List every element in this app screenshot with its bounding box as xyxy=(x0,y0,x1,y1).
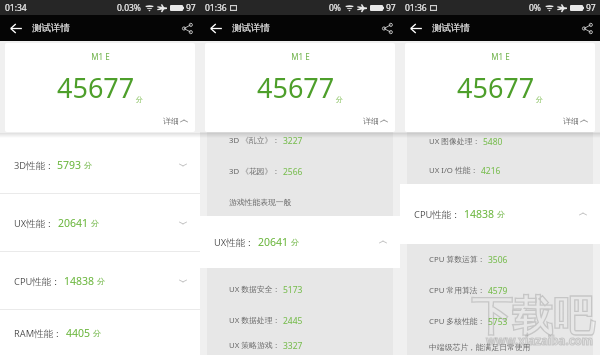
button[interactable]: 3D性能： xyxy=(0,136,200,193)
staticText: UX性能： xyxy=(14,217,55,230)
staticText: M1 E xyxy=(491,51,510,62)
staticText: RAM性能： xyxy=(14,327,63,340)
staticText: 3D 《乱立》： xyxy=(229,135,281,146)
staticText: 4405 xyxy=(66,326,91,340)
button[interactable]: RAM性能： xyxy=(0,310,200,355)
staticText: 14838 xyxy=(64,274,95,288)
staticText: 中端级芯片，能满足日常使用 xyxy=(429,342,531,352)
staticText: 3D 《花园》： xyxy=(229,166,281,177)
staticText: 分 xyxy=(91,218,99,228)
staticText: 0% xyxy=(329,2,341,14)
button[interactable]: Back xyxy=(205,17,227,39)
staticText: 详细 xyxy=(163,116,179,126)
staticText: 详细 xyxy=(563,116,579,126)
button[interactable]: 详细 xyxy=(163,116,188,126)
button[interactable]: Share xyxy=(178,19,196,37)
staticText: 3227 xyxy=(283,135,303,147)
button[interactable]: Back xyxy=(405,17,427,39)
staticText: UX 数据处理： xyxy=(229,315,281,326)
staticText: 4216 xyxy=(481,165,501,177)
staticText: www.xiazaiba.com xyxy=(486,333,593,349)
staticText: UX 数据安全： xyxy=(229,284,281,295)
button[interactable]: CPU性能： xyxy=(0,252,200,309)
staticText: 5173 xyxy=(283,284,303,296)
staticText: UX性能： xyxy=(214,236,255,249)
staticText: 97 xyxy=(586,2,596,14)
staticText: 详细 xyxy=(363,116,379,126)
button[interactable]: Back xyxy=(5,17,27,39)
staticText: CPU 常用算法： xyxy=(429,285,486,296)
staticText: 45677 xyxy=(457,69,535,106)
button[interactable]: UX性能： xyxy=(200,216,400,268)
staticText: CPU 算数运算： xyxy=(429,254,486,265)
staticText: M1 E xyxy=(291,51,310,62)
staticText: 45677 xyxy=(257,69,335,106)
staticText: 测试详情 xyxy=(32,22,70,34)
staticText: 分 xyxy=(97,276,105,286)
button[interactable]: 详细 xyxy=(363,116,388,126)
staticText: 45677 xyxy=(57,69,135,106)
staticText: UX 图像处理： xyxy=(429,136,481,147)
staticText: 测试详情 xyxy=(232,22,270,34)
staticText: 分 xyxy=(536,95,543,104)
staticText: 97 xyxy=(186,2,196,14)
staticText: 4579 xyxy=(488,285,508,297)
staticText: 2445 xyxy=(283,315,303,327)
staticText: 5793 xyxy=(57,158,82,172)
button[interactable]: Share xyxy=(578,19,596,37)
staticText: 01:36 xyxy=(205,2,227,14)
button[interactable]: M1 E xyxy=(5,43,195,132)
staticText: 游戏性能表现一般 xyxy=(229,197,292,207)
staticText: UX 策略游戏： xyxy=(229,340,281,351)
staticText: 分 xyxy=(291,237,299,247)
staticText: 分 xyxy=(84,160,92,170)
staticText: CPU性能： xyxy=(414,208,461,221)
staticText: 3D性能： xyxy=(14,159,54,172)
button[interactable]: M1 E xyxy=(205,43,395,132)
staticText: 下载吧 xyxy=(471,291,594,343)
staticText: M1 E xyxy=(91,51,110,62)
staticText: 14838 xyxy=(464,207,495,221)
staticText: CPU 多核性能： xyxy=(429,316,486,327)
staticText: 0.03% xyxy=(117,2,141,14)
staticText: UX I/O 性能： xyxy=(429,165,479,176)
staticText: 0% xyxy=(529,2,541,14)
staticText: 5480 xyxy=(483,136,503,148)
button[interactable]: CPU性能： xyxy=(400,184,600,244)
staticText: 分 xyxy=(497,209,505,219)
staticText: 3327 xyxy=(283,340,303,352)
staticText: 01:36 xyxy=(405,2,427,14)
staticText: 5753 xyxy=(488,316,508,328)
staticText: 分 xyxy=(93,328,101,338)
staticText: 测试详情 xyxy=(432,22,470,34)
staticText: 2566 xyxy=(283,166,303,178)
button[interactable]: 详细 xyxy=(563,116,588,126)
staticText: CPU性能： xyxy=(14,275,61,288)
button[interactable]: M1 E xyxy=(405,43,595,132)
staticText: 分 xyxy=(336,95,343,104)
staticText: 97 xyxy=(386,2,396,14)
button[interactable]: Share xyxy=(378,19,396,37)
staticText: 20641 xyxy=(258,235,289,249)
button[interactable]: UX性能： xyxy=(0,194,200,251)
staticText: 20641 xyxy=(58,216,89,230)
staticText: 分 xyxy=(136,95,143,104)
staticText: 01:34 xyxy=(5,2,27,14)
staticText: 3506 xyxy=(488,254,508,266)
